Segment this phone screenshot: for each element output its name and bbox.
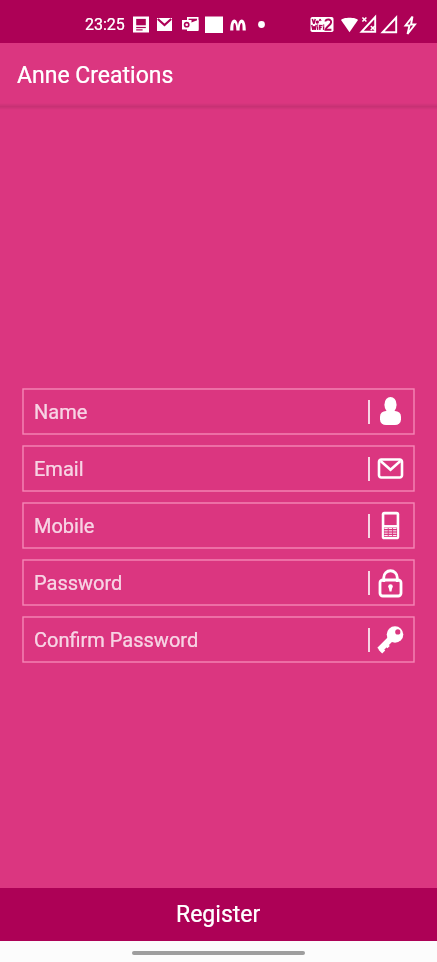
button[interactable]: Name field xyxy=(23,389,414,434)
button[interactable]: Mobile field xyxy=(23,503,414,548)
staticText: Name xyxy=(34,400,368,423)
button[interactable]: Register xyxy=(0,888,437,941)
staticText: 23:25 xyxy=(85,15,125,34)
button[interactable]: Password field xyxy=(23,560,414,605)
staticText: Mobile xyxy=(34,514,368,537)
staticText: Register xyxy=(176,901,261,928)
staticText: Email xyxy=(34,457,368,480)
staticText: Anne Creations xyxy=(17,62,174,89)
button[interactable]: Email field xyxy=(23,446,414,491)
staticText: Confirm Password xyxy=(34,628,368,651)
button[interactable]: Confirm password field xyxy=(23,617,414,662)
staticText: Password xyxy=(34,571,368,594)
